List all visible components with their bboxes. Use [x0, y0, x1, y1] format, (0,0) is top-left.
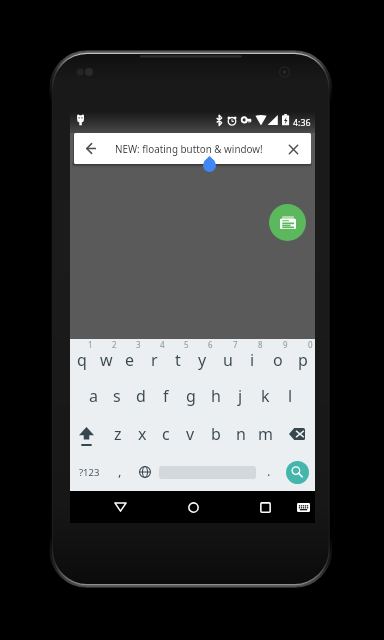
staticText: t — [175, 349, 181, 371]
button[interactable]: f — [153, 377, 178, 415]
button[interactable]: 0 — [290, 339, 315, 377]
button[interactable]: s — [105, 377, 129, 415]
button[interactable]: Back — [74, 133, 311, 164]
staticText: k — [261, 385, 270, 407]
button[interactable]: m — [253, 415, 278, 453]
button[interactable]: Close — [281, 137, 305, 161]
button[interactable]: Shift — [70, 415, 106, 453]
staticText: 3 — [136, 339, 141, 350]
button[interactable]: 7 — [215, 339, 240, 377]
button[interactable]: b — [203, 415, 228, 453]
staticText: ?123 — [79, 466, 100, 479]
staticText: 9 — [283, 339, 288, 350]
button[interactable]: 8 — [240, 339, 265, 377]
staticText: 4 — [160, 339, 165, 350]
staticText: , — [118, 462, 122, 480]
button[interactable]: ?123 — [71, 453, 105, 491]
staticText: w — [100, 349, 113, 371]
button[interactable]: j — [228, 377, 253, 415]
staticText: 6 — [208, 339, 213, 350]
staticText: 8 — [258, 339, 263, 350]
staticText: h — [211, 385, 221, 407]
staticText: s — [113, 385, 121, 407]
staticText: y — [198, 349, 207, 371]
button[interactable]: 6 — [190, 339, 215, 377]
staticText: x — [138, 423, 147, 445]
staticText: r — [151, 349, 158, 371]
button[interactable]: 3 — [118, 339, 142, 377]
staticText: p — [298, 349, 308, 371]
button[interactable] — [156, 453, 256, 491]
staticText: u — [223, 349, 233, 371]
staticText: NEW: floating button & window! — [115, 142, 263, 155]
staticText: 4:36 — [293, 117, 311, 129]
staticText: i — [250, 349, 255, 371]
button[interactable]: 1 — [70, 339, 94, 377]
button[interactable]: g — [178, 377, 203, 415]
staticText: d — [136, 385, 146, 407]
button[interactable]: x — [130, 415, 154, 453]
button[interactable]: 5 — [166, 339, 190, 377]
staticText: g — [186, 385, 196, 407]
staticText: n — [236, 423, 246, 445]
button[interactable]: h — [203, 377, 228, 415]
staticText: o — [273, 349, 283, 371]
staticText: a — [89, 385, 98, 407]
staticText: 5 — [184, 339, 189, 350]
button[interactable]: Switch keyboard — [286, 491, 320, 523]
button[interactable]: , — [106, 453, 131, 491]
staticText: 2 — [112, 339, 117, 350]
button[interactable]: l — [278, 377, 303, 415]
staticText: l — [288, 385, 293, 407]
button[interactable]: . — [256, 453, 280, 491]
button[interactable]: Compose note — [269, 204, 306, 241]
staticText: m — [258, 423, 273, 445]
staticText: q — [77, 349, 87, 371]
staticText: e — [125, 349, 135, 371]
button[interactable]: z — [106, 415, 130, 453]
staticText: 0 — [308, 339, 313, 350]
staticText: 7 — [233, 339, 238, 350]
button[interactable]: Recent apps — [243, 491, 287, 523]
staticText: v — [186, 423, 195, 445]
staticText: z — [114, 423, 122, 445]
staticText: j — [238, 385, 243, 407]
staticText: 1 — [88, 339, 93, 350]
button[interactable]: Back — [98, 491, 142, 523]
button[interactable]: c — [154, 415, 178, 453]
staticText: c — [162, 423, 170, 445]
button[interactable]: Change language — [131, 453, 156, 491]
button[interactable]: 9 — [265, 339, 290, 377]
staticText: . — [267, 462, 271, 480]
button[interactable]: k — [253, 377, 278, 415]
button[interactable]: Home — [171, 491, 215, 523]
button[interactable]: 4 — [142, 339, 166, 377]
button[interactable]: d — [129, 377, 153, 415]
button[interactable]: a — [81, 377, 105, 415]
button[interactable]: Search — [280, 453, 315, 491]
button[interactable]: v — [178, 415, 203, 453]
button[interactable]: Backspace — [278, 415, 315, 453]
staticText: b — [211, 423, 221, 445]
button[interactable]: n — [228, 415, 253, 453]
button[interactable]: 2 — [94, 339, 118, 377]
button[interactable]: Back — [76, 133, 106, 164]
staticText: f — [163, 385, 169, 407]
